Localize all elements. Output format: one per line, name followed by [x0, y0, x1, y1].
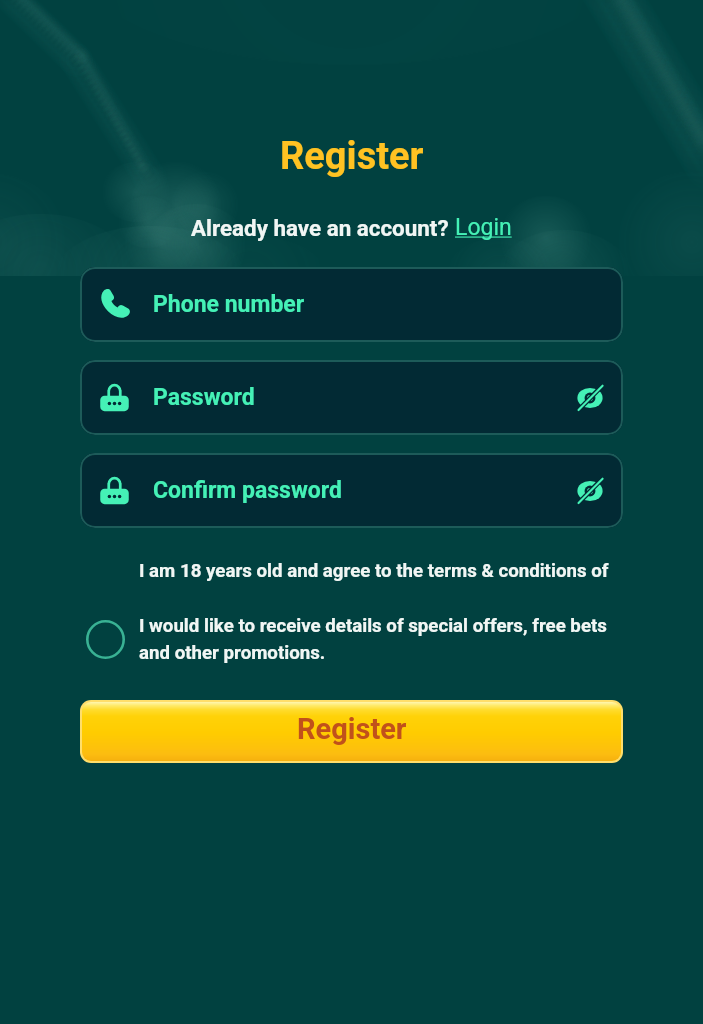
button[interactable]: Phone number [80, 267, 623, 342]
button[interactable]: Show password [571, 472, 609, 510]
staticText: Register [297, 712, 407, 746]
button[interactable]: Password [80, 360, 623, 435]
staticText: I would like to receive details of speci… [139, 615, 628, 663]
button[interactable]: Confirm password [80, 453, 623, 528]
staticText: Login [455, 214, 512, 241]
button[interactable]: Register [82, 702, 621, 761]
staticText: Register [280, 134, 424, 179]
button[interactable]: Show password [571, 379, 609, 417]
staticText: Confirm password [153, 477, 342, 504]
staticText: Phone number [153, 291, 305, 318]
button[interactable]: Opt in to promotions [85, 619, 125, 659]
staticText: I am 18 years old and agree to the terms… [139, 560, 609, 582]
button[interactable]: Login [455, 214, 512, 241]
staticText: Already have an account? [191, 215, 449, 241]
staticText: Password [153, 384, 255, 411]
